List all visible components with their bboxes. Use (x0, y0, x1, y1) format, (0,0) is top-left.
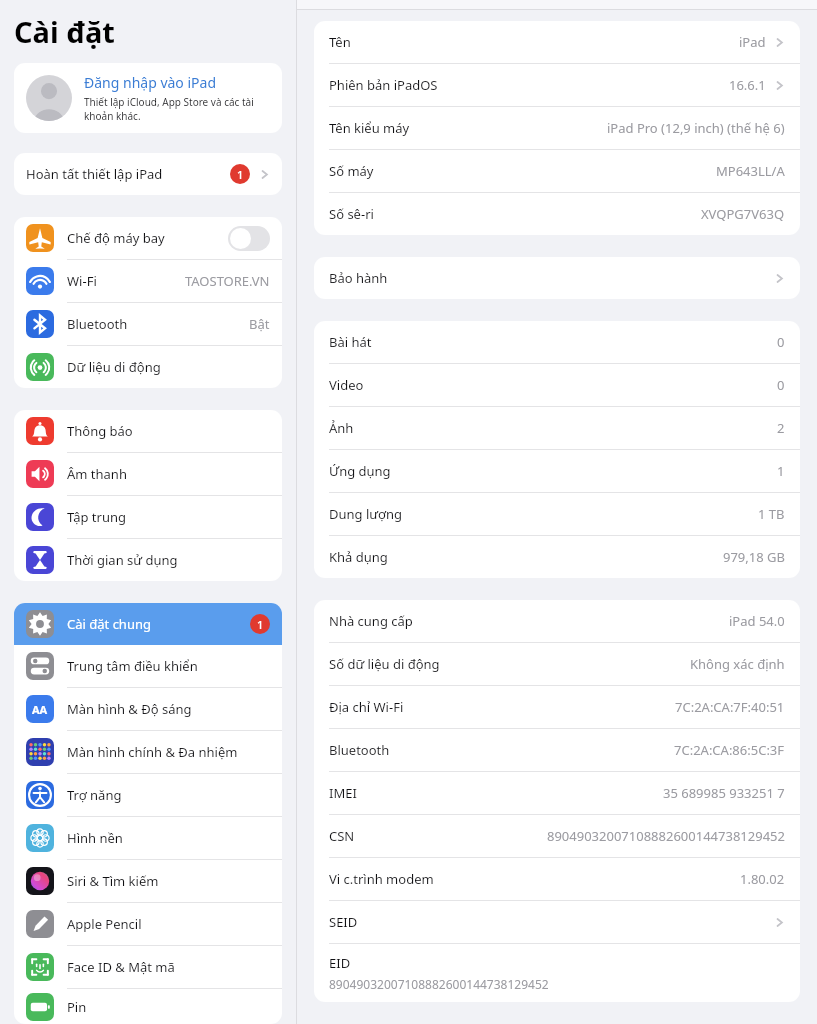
staticText: TAOSTORE.VN (185, 272, 270, 290)
staticText: Âm thanh (67, 465, 270, 483)
button[interactable]: AA (14, 688, 282, 730)
staticText: 89049032007108882600144738129452 (329, 976, 549, 992)
staticText: 2 (777, 419, 785, 437)
button[interactable]: Tập trung (14, 496, 282, 538)
button[interactable]: Số dữ liệu di động (314, 643, 800, 685)
staticText: Cài đặt chung (67, 615, 250, 633)
staticText: AA (32, 702, 48, 717)
button[interactable]: Khả dụng (314, 536, 800, 578)
staticText: Màn hình & Độ sáng (67, 700, 270, 718)
button[interactable]: Âm thanh (14, 453, 282, 495)
staticText: 89049032007108882600144738129452 (547, 827, 785, 845)
staticText: Địa chỉ Wi-Fi (329, 698, 404, 716)
staticText: 1 (257, 617, 264, 632)
staticText: Chế độ máy bay (67, 229, 228, 247)
button[interactable]: Tên kiểu máy (314, 107, 800, 149)
staticText: 0 (777, 333, 785, 351)
button[interactable]: Màn hình chính & Đa nhiệm (14, 731, 282, 773)
staticText: Face ID & Mật mã (67, 958, 270, 976)
staticText: Ứng dụng (329, 462, 391, 480)
button[interactable]: Số máy (314, 150, 800, 192)
staticText: Tên kiểu máy (329, 119, 410, 137)
staticText: 7C:2A:CA:7F:40:51 (675, 698, 785, 716)
staticText: Thời gian sử dụng (67, 551, 270, 569)
button[interactable]: Wi-Fi (14, 260, 282, 302)
button[interactable]: SEID (314, 901, 800, 943)
staticText: Bật (249, 315, 270, 333)
button[interactable]: Chế độ máy bay (14, 217, 282, 259)
staticText: Số dữ liệu di động (329, 655, 440, 673)
staticText: Hoàn tất thiết lập iPad (26, 165, 230, 183)
button[interactable]: Thời gian sử dụng (14, 539, 282, 581)
staticText: Thiết lập iCloud, App Store và các tài (84, 95, 254, 109)
staticText: 1 (237, 167, 244, 182)
staticText: iPad 54.0 (729, 612, 785, 630)
staticText: Video (329, 376, 364, 394)
staticText: 1 TB (758, 505, 785, 523)
button[interactable]: IMEI (314, 772, 800, 814)
staticText: EID (329, 954, 351, 972)
button[interactable]: Pin (14, 989, 282, 1024)
button[interactable]: Phiên bản iPadOS (314, 64, 800, 106)
staticText: 35 689985 933251 7 (663, 784, 785, 802)
button[interactable]: Trung tâm điều khiển (14, 645, 282, 687)
staticText: XVQPG7V63Q (701, 205, 785, 223)
button[interactable]: Bài hát (314, 321, 800, 363)
button[interactable]: EID (314, 944, 800, 1002)
button[interactable]: Vi c.trình modem (314, 858, 800, 900)
staticText: 979,18 GB (723, 548, 785, 566)
button[interactable]: Hoàn tất thiết lập iPad (14, 153, 282, 195)
button[interactable]: Địa chỉ Wi-Fi (314, 686, 800, 728)
button[interactable]: Cài đặt chung (14, 603, 282, 645)
button[interactable]: Trợ năng (14, 774, 282, 816)
button[interactable]: Ứng dụng (314, 450, 800, 492)
staticText: Pin (67, 998, 270, 1016)
staticText: Khả dụng (329, 548, 388, 566)
button[interactable]: CSN (314, 815, 800, 857)
staticText: chợTỐT (315, 492, 417, 529)
button[interactable]: Bảo hành (314, 257, 800, 299)
staticText: Bài hát (329, 333, 372, 351)
button[interactable]: Dữ liệu di động (14, 346, 282, 388)
staticText: 0 (777, 376, 785, 394)
staticText: Phiên bản iPadOS (329, 76, 438, 94)
staticText: Wi-Fi (67, 272, 185, 290)
button[interactable]: Bluetooth (14, 303, 282, 345)
button[interactable]: Airplane mode toggle (228, 226, 270, 251)
staticText: Apple Pencil (67, 915, 270, 933)
button[interactable]: Video (314, 364, 800, 406)
button[interactable]: Nhà cung cấp (314, 600, 800, 642)
staticText: Tên (329, 33, 351, 51)
staticText: 16.6.1 (729, 76, 766, 94)
staticText: Cài đặt (14, 12, 115, 51)
button[interactable]: Siri & Tìm kiếm (14, 860, 282, 902)
staticText: Dữ liệu di động (67, 358, 270, 376)
button[interactable]: Apple Pencil (14, 903, 282, 945)
staticText: SEID (329, 913, 358, 931)
staticText: 1.80.02 (740, 870, 785, 888)
staticText: 1 (777, 462, 785, 480)
button[interactable]: Đăng nhập vào iPad (14, 63, 282, 133)
staticText: Bluetooth (67, 315, 249, 333)
staticText: iPad (739, 33, 766, 51)
button[interactable]: Số sê-ri (314, 193, 800, 235)
staticText: Thông báo (67, 422, 270, 440)
staticText: Bluetooth (329, 741, 390, 759)
button[interactable]: Dung lượng (314, 493, 800, 535)
button[interactable]: Hình nền (14, 817, 282, 859)
staticText: Dung lượng (329, 505, 403, 523)
staticText: IMEI (329, 784, 357, 802)
staticText: Đăng nhập vào iPad (84, 73, 217, 92)
staticText: CSN (329, 827, 355, 845)
button[interactable]: Bluetooth (314, 729, 800, 771)
staticText: Trợ năng (67, 786, 270, 804)
button[interactable]: Tên (314, 21, 800, 63)
button[interactable]: Thông báo (14, 410, 282, 452)
staticText: Số máy (329, 162, 374, 180)
button[interactable]: Face ID & Mật mã (14, 946, 282, 988)
staticText: Màn hình chính & Đa nhiệm (67, 743, 270, 761)
staticText: Tập trung (67, 508, 270, 526)
staticText: Trung tâm điều khiển (67, 657, 270, 675)
staticText: Hình nền (67, 829, 270, 847)
button[interactable]: Ảnh (314, 407, 800, 449)
